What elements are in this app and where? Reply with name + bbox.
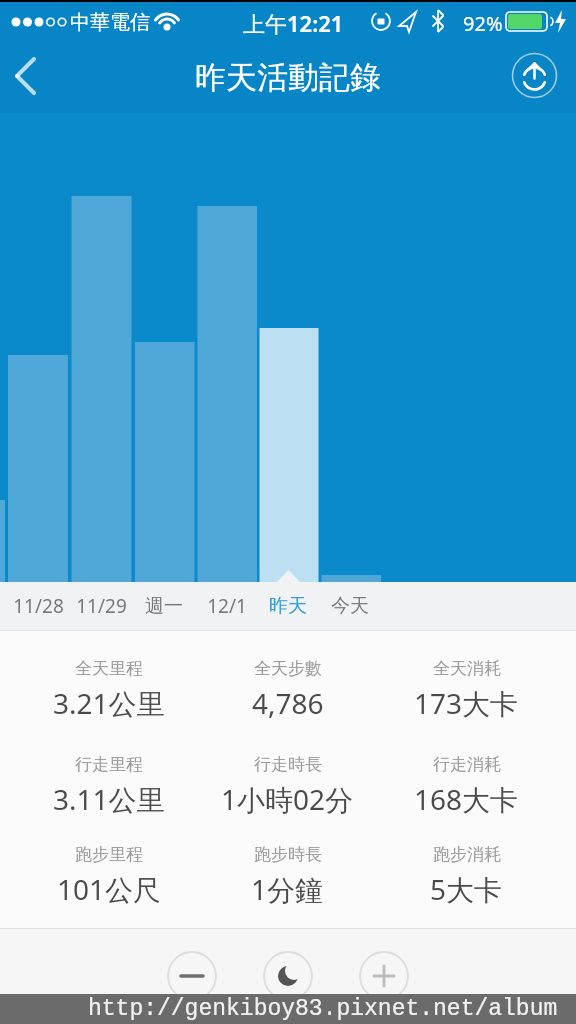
staticText: 全天里程	[75, 658, 143, 679]
staticText: 昨天活動記錄	[195, 58, 381, 97]
staticText: 1分鐘	[251, 870, 324, 908]
button[interactable]: 行走消耗	[377, 754, 556, 818]
staticText: 今天	[331, 594, 369, 618]
button[interactable]	[512, 54, 557, 99]
staticText: 中華電信	[70, 10, 150, 35]
button[interactable]: 行走里程	[20, 754, 198, 818]
staticText: 101公尺	[57, 870, 162, 908]
staticText: 173大卡	[414, 684, 519, 722]
button[interactable]: 11/28	[0, 582, 78, 630]
staticText: 168大卡	[414, 780, 519, 818]
staticText: 跑步消耗	[433, 844, 501, 865]
button[interactable]	[359, 951, 409, 1001]
staticText: 92%	[463, 10, 503, 37]
staticText: 4,786	[252, 684, 324, 722]
button[interactable]	[167, 951, 217, 1001]
button[interactable]: 跑步時長	[198, 844, 377, 908]
staticText: 昨天	[269, 594, 307, 618]
button[interactable]: 週一	[124, 582, 204, 630]
button[interactable]: 跑步消耗	[377, 844, 556, 908]
staticText: 5大卡	[430, 870, 503, 908]
staticText: 跑步時長	[254, 844, 322, 865]
button[interactable]: 今天	[310, 582, 390, 630]
staticText: 跑步里程	[75, 844, 143, 865]
button[interactable]: 全天步數	[198, 658, 377, 722]
button[interactable]: 全天消耗	[377, 658, 556, 722]
staticText: 12/1	[207, 593, 247, 619]
button[interactable]	[6, 52, 54, 100]
staticText: 11/28	[13, 593, 64, 619]
staticText: 3.21公里	[53, 684, 165, 722]
staticText: http://genkiboy83.pixnet.net/album	[88, 996, 558, 1022]
button[interactable]: 跑步里程	[20, 844, 198, 908]
staticText: 1小時02分	[221, 780, 354, 818]
button[interactable]: 昨天	[248, 582, 328, 630]
staticText: 行走時長	[254, 754, 322, 775]
button[interactable]: 11/29	[61, 582, 141, 630]
staticText: 11/29	[76, 593, 127, 619]
button[interactable]: 全天里程	[20, 658, 198, 722]
staticText: 週一	[145, 594, 183, 618]
staticText: 行走里程	[75, 754, 143, 775]
staticText: 全天消耗	[433, 658, 501, 679]
staticText: 3.11公里	[53, 780, 165, 818]
button[interactable]: 行走時長	[198, 754, 377, 818]
staticText: 行走消耗	[433, 754, 501, 775]
button[interactable]	[0, 113, 576, 582]
button[interactable]: 12/1	[187, 582, 267, 630]
staticText: 全天步數	[254, 658, 322, 679]
button[interactable]	[263, 951, 313, 1001]
staticText: 上午12:21	[243, 8, 344, 38]
